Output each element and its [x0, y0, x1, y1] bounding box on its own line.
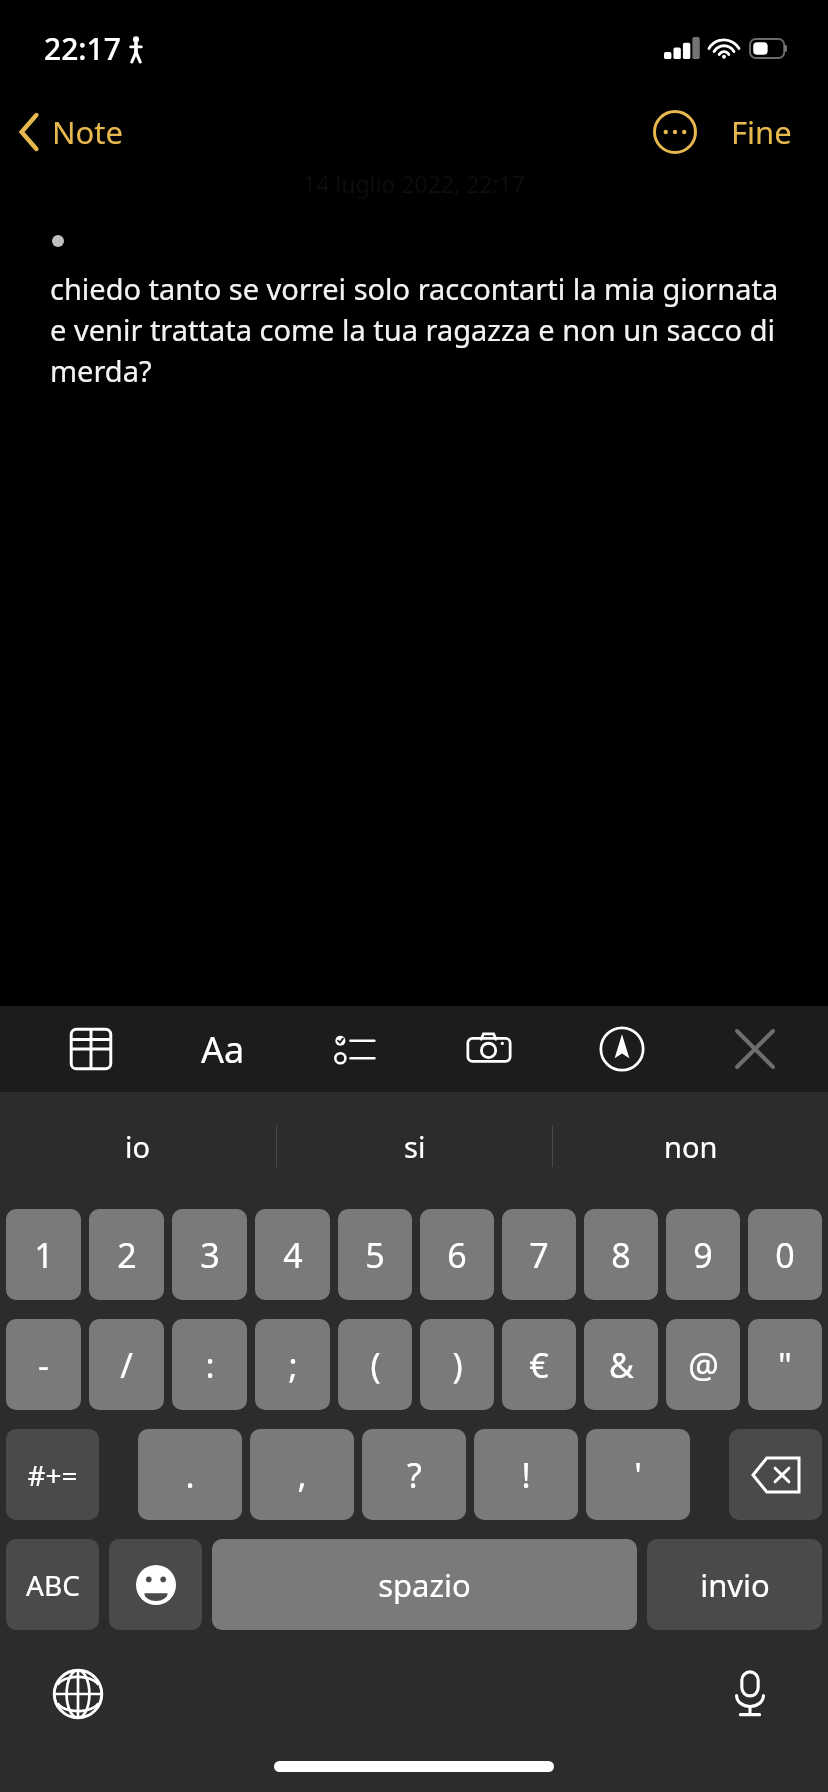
staticText: spazio [378, 1564, 471, 1606]
staticText: si [404, 1127, 426, 1166]
staticText: Aa [201, 1025, 245, 1074]
button[interactable]: Table [60, 1018, 122, 1080]
staticText: 9 [693, 1232, 713, 1278]
button[interactable]: ? [362, 1429, 466, 1520]
staticText: 3 [200, 1232, 220, 1278]
button[interactable]: 4 [255, 1209, 330, 1300]
button[interactable]: io [0, 1092, 276, 1200]
button[interactable]: More options [649, 106, 701, 158]
staticText: ) [452, 1342, 463, 1388]
button[interactable]: Emoji [109, 1539, 202, 1630]
staticText: 6 [447, 1232, 467, 1278]
staticText: chiedo tanto se vorrei solo raccontarti … [50, 269, 790, 391]
button[interactable]: Backspace [729, 1429, 822, 1520]
button[interactable]: 9 [666, 1209, 740, 1300]
button[interactable]: spazio [212, 1539, 637, 1630]
button[interactable]: 1 [6, 1209, 81, 1300]
button[interactable]: @ [666, 1319, 740, 1410]
staticText: #+= [27, 1456, 78, 1494]
button[interactable]: 8 [584, 1209, 658, 1300]
button[interactable]: , [250, 1429, 354, 1520]
button[interactable]: Close keyboard [724, 1018, 786, 1080]
button[interactable]: ) [420, 1319, 494, 1410]
button[interactable]: 6 [420, 1209, 494, 1300]
staticText: 8 [611, 1232, 631, 1278]
button[interactable]: #+= [6, 1429, 99, 1520]
button[interactable]: 7 [502, 1209, 576, 1300]
staticText: 4 [283, 1232, 303, 1278]
button[interactable]: 5 [338, 1209, 412, 1300]
staticText: . [185, 1452, 195, 1498]
button[interactable]: ! [474, 1429, 578, 1520]
button[interactable]: - [6, 1319, 81, 1410]
staticText: 7 [529, 1232, 549, 1278]
button[interactable]: Markup [591, 1018, 653, 1080]
staticText: ! [521, 1452, 531, 1498]
button[interactable]: Dictate [714, 1658, 786, 1730]
staticText: - [38, 1342, 49, 1388]
staticText: 2 [117, 1232, 137, 1278]
button[interactable]: Change keyboard language [42, 1658, 114, 1730]
button[interactable]: ; [255, 1319, 330, 1410]
button[interactable]: Aa [192, 1018, 254, 1080]
staticText: 5 [365, 1232, 385, 1278]
button[interactable]: 3 [172, 1209, 247, 1300]
staticText: ' [634, 1452, 642, 1498]
staticText: 0 [775, 1232, 795, 1278]
button[interactable]: 2 [89, 1209, 164, 1300]
staticText: : [205, 1342, 215, 1388]
staticText: Fine [731, 111, 792, 153]
button[interactable]: si [277, 1092, 552, 1200]
button[interactable]: Checklist [325, 1018, 387, 1080]
button[interactable]: . [138, 1429, 242, 1520]
button[interactable]: Note [0, 103, 139, 161]
button[interactable]: Camera [458, 1018, 520, 1080]
staticText: & [609, 1342, 634, 1388]
button[interactable]: € [502, 1319, 576, 1410]
button[interactable]: : [172, 1319, 247, 1410]
staticText: ( [370, 1342, 381, 1388]
staticText: / [120, 1342, 133, 1388]
button[interactable]: ( [338, 1319, 412, 1410]
staticText: , [297, 1452, 307, 1498]
button[interactable]: / [89, 1319, 164, 1410]
button[interactable]: ABC [6, 1539, 99, 1630]
button[interactable]: ' [586, 1429, 690, 1520]
staticText: ABC [26, 1566, 80, 1604]
staticText: @ [688, 1342, 719, 1388]
button[interactable]: non [553, 1092, 828, 1200]
staticText: Note [52, 111, 123, 153]
staticText: 22:17 [44, 28, 121, 69]
staticText: ; [288, 1342, 298, 1388]
staticText: non [664, 1127, 718, 1166]
button[interactable]: invio [647, 1539, 822, 1630]
button[interactable]: & [584, 1319, 658, 1410]
staticText: " [778, 1342, 792, 1388]
staticText: 14 luglio 2022, 22:17 [303, 168, 525, 199]
staticText: invio [700, 1564, 770, 1606]
button[interactable]: " [748, 1319, 822, 1410]
staticText: io [125, 1127, 151, 1166]
staticText: ? [407, 1452, 422, 1498]
staticText: € [529, 1342, 549, 1388]
button[interactable]: 0 [748, 1209, 822, 1300]
button[interactable]: Fine [725, 103, 798, 161]
staticText: 1 [34, 1232, 54, 1278]
